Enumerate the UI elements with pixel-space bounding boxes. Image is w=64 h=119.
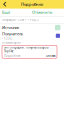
staticText: Подробнее — [4, 54, 20, 58]
staticText: Получатель — [2, 31, 23, 36]
staticText: Отменить — [32, 10, 52, 15]
staticText: Комментарий — [2, 41, 21, 44]
staticText: • 1234 — [2, 37, 12, 40]
button[interactable]: Ещё — [0, 10, 10, 15]
button[interactable]: Отменить — [32, 10, 64, 15]
staticText: Ещё — [2, 10, 10, 15]
staticText: Подробнее — [21, 2, 43, 7]
staticText: Оплата — [46, 54, 55, 58]
staticText: Операция: Счёт 1 • Ряд 2 — [2, 18, 39, 22]
staticText: Тип операции: Покупка товаров Toplike — [4, 46, 49, 53]
staticText: Источник — [2, 25, 19, 30]
button[interactable]: Back — [0, 0, 8, 9]
